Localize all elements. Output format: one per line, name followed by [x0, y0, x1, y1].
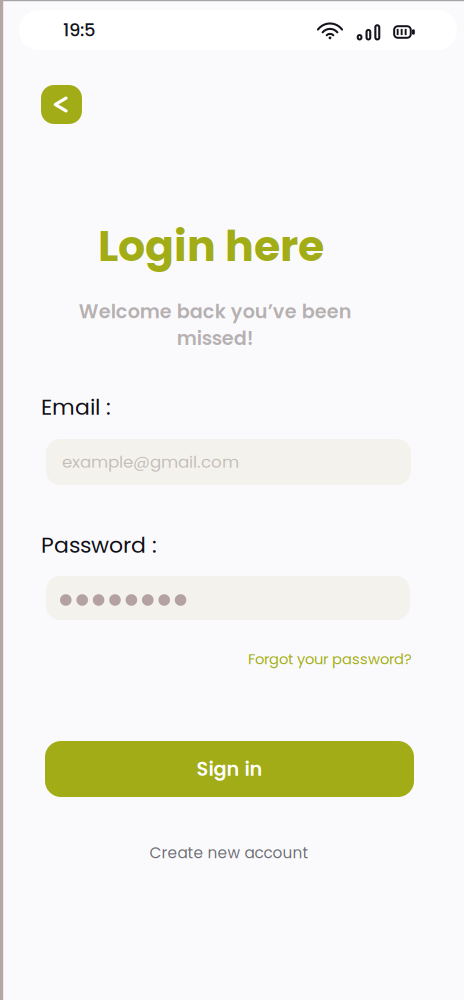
- staticText: Forgot your password?: [248, 649, 412, 669]
- button[interactable]: Forgot your password?: [48, 648, 412, 670]
- button[interactable]: Create new account: [114, 842, 344, 864]
- button[interactable]: Sign in: [45, 741, 414, 797]
- staticText: Sign in: [196, 755, 262, 783]
- button[interactable]: Back: [41, 85, 82, 124]
- staticText: Welcome back you’ve been missed!: [78, 298, 351, 352]
- staticText: 19:5: [63, 17, 96, 43]
- staticText: Password :: [41, 530, 157, 560]
- staticText: example@gmail.com: [62, 450, 239, 474]
- staticText: Email :: [41, 392, 111, 422]
- staticText: Login here: [98, 216, 324, 276]
- staticText: Create new account: [149, 842, 308, 864]
